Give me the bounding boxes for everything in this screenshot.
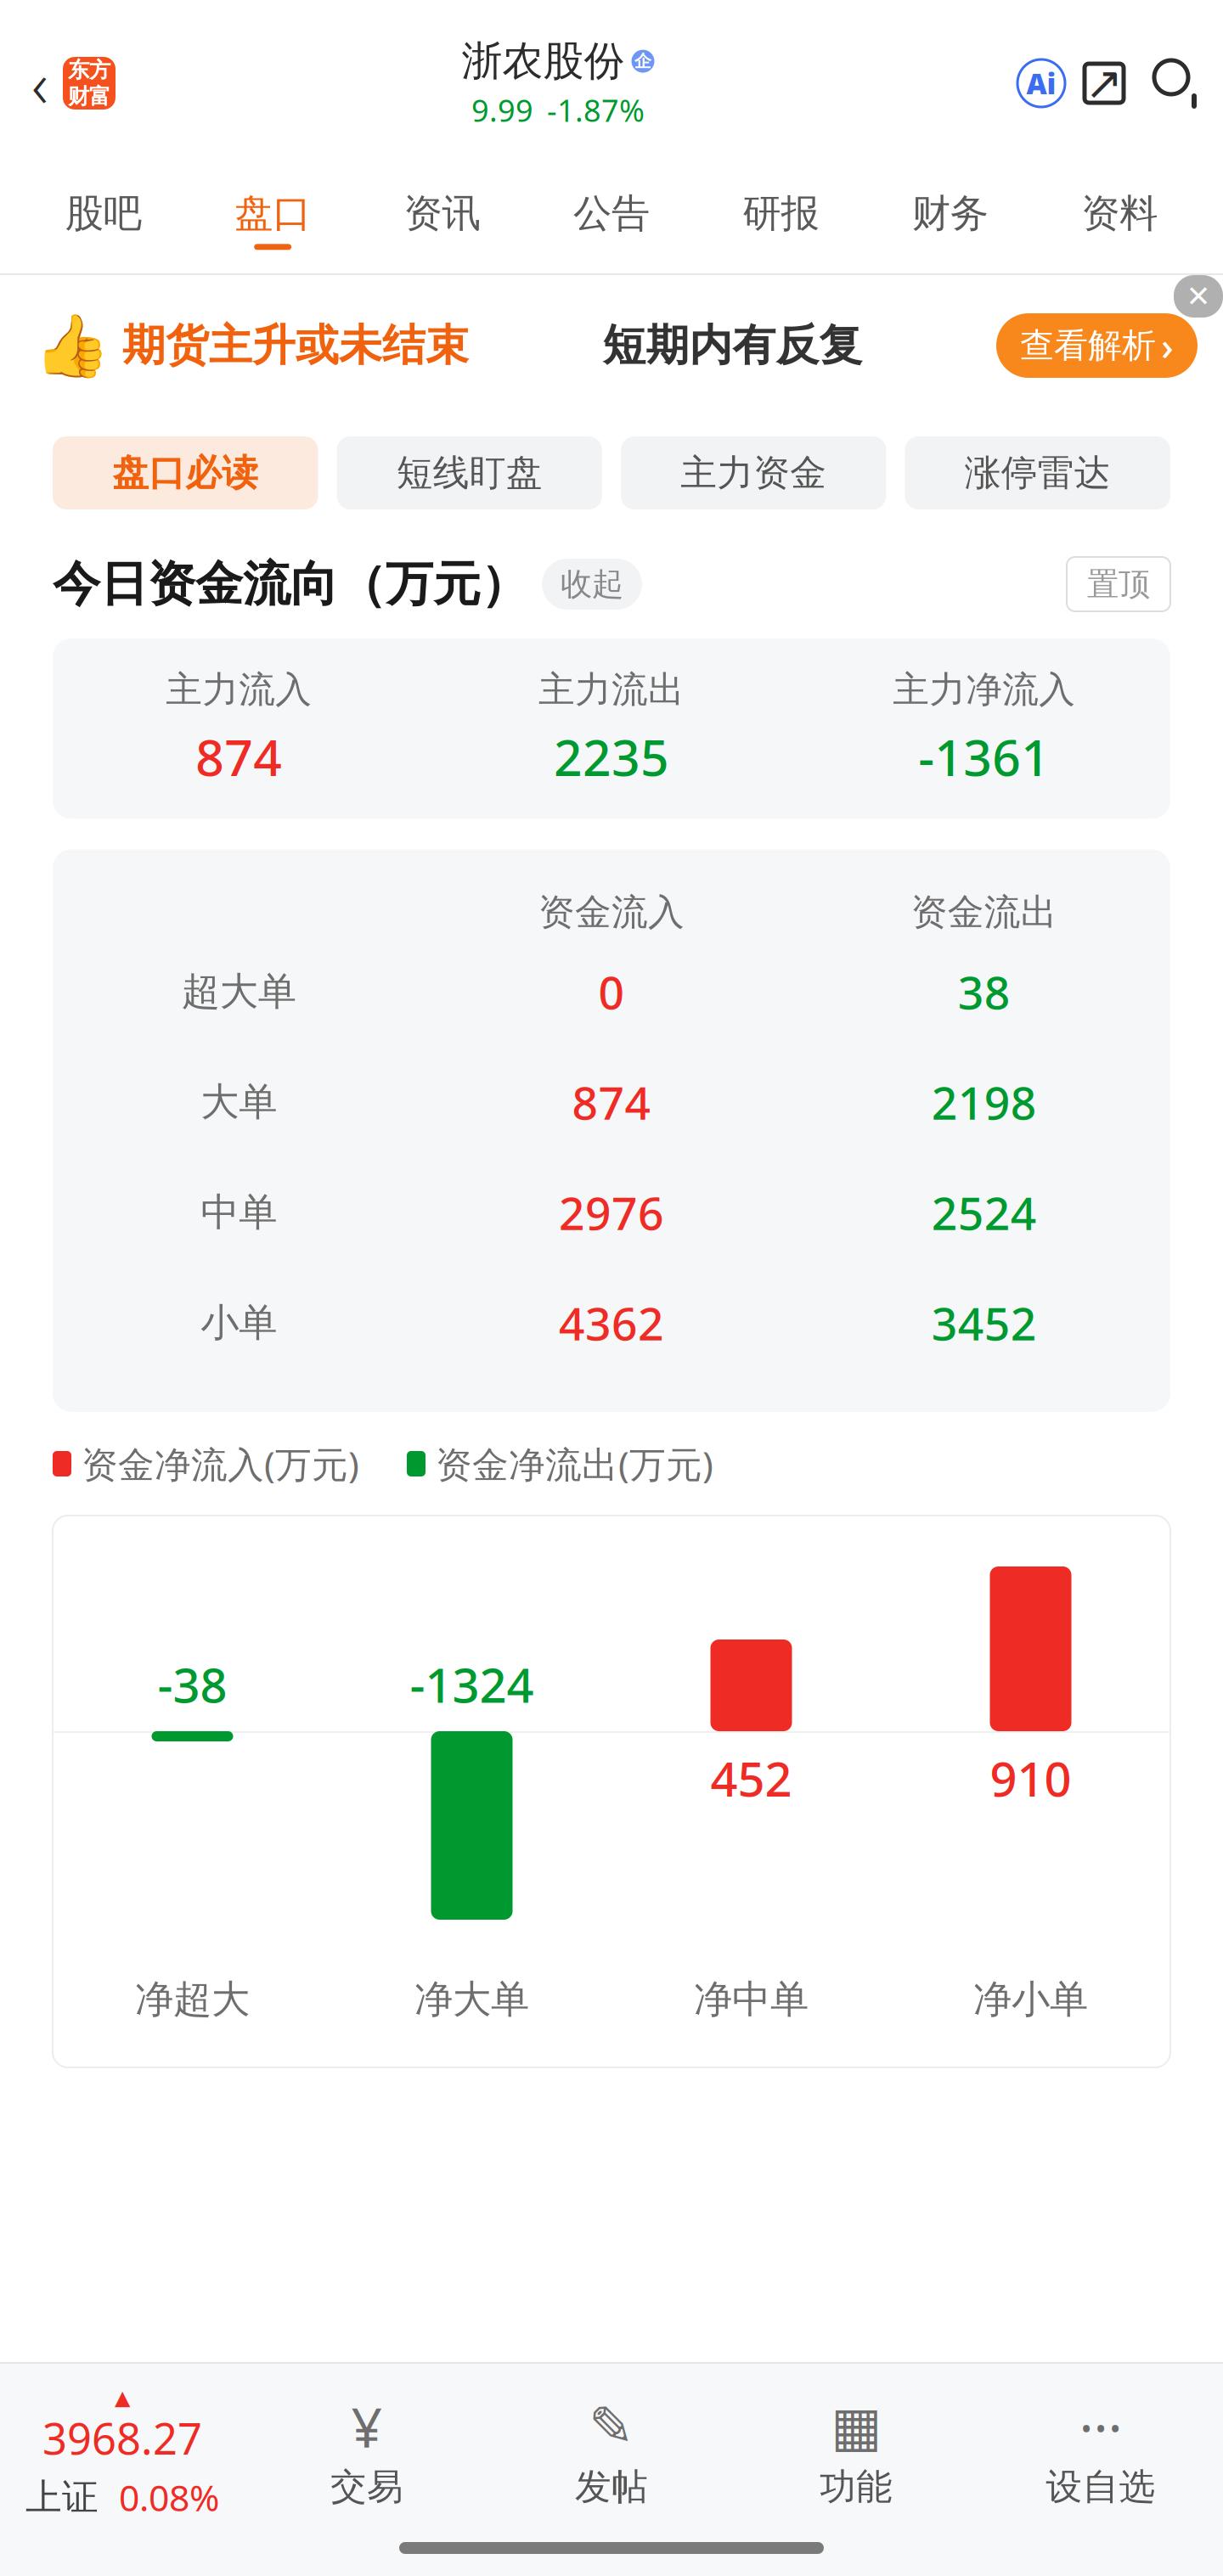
staticText: 主力流出 — [538, 667, 685, 712]
staticText: 874 — [572, 1072, 651, 1132]
staticText: 查看解析 — [1020, 325, 1156, 366]
staticText: 资金流出 — [911, 890, 1057, 935]
staticText: -1.87% — [547, 90, 645, 130]
button[interactable]: 短线盯盘 — [337, 436, 602, 509]
staticText: ↗ — [1085, 57, 1123, 109]
button[interactable]: ▦ — [734, 2398, 978, 2509]
button[interactable]: ··· — [978, 2398, 1223, 2509]
staticText: 净中单 — [694, 1976, 809, 2023]
staticText: 资金净流出(万元) — [436, 1440, 713, 1488]
staticText: 0 — [598, 962, 625, 1022]
staticText: ‹ — [31, 41, 48, 125]
button[interactable]: 盘口必读 — [53, 436, 318, 509]
staticText: 主力资金 — [680, 451, 827, 495]
staticText: 上证 — [25, 2475, 99, 2520]
button[interactable]: 查看解析 — [996, 313, 1198, 378]
staticText: 主力流入 — [166, 667, 312, 712]
staticText: 盘口 — [234, 190, 311, 237]
staticText: 超大单 — [182, 968, 296, 1015]
staticText: 资金流入 — [538, 890, 685, 935]
staticText: 短期内有反复 — [603, 319, 862, 372]
staticText: 东方 — [68, 57, 110, 83]
button[interactable]: Close ad — [1174, 275, 1223, 318]
staticText: ¥ — [351, 2390, 383, 2462]
button[interactable]: ✎ — [489, 2398, 734, 2509]
staticText: 3452 — [931, 1293, 1037, 1353]
staticText: › — [1161, 320, 1174, 371]
button[interactable]: 涨停雷达 — [905, 436, 1170, 509]
staticText: 发帖 — [575, 2465, 648, 2509]
button[interactable]: East Money home — [63, 57, 116, 110]
staticText: ▲ — [115, 2386, 130, 2409]
staticText: 主力净流入 — [893, 667, 1075, 712]
staticText: 2235 — [554, 724, 669, 790]
staticText: 38 — [958, 962, 1010, 1022]
button[interactable]: 财务 — [866, 166, 1035, 273]
button[interactable]: 股吧 — [19, 166, 188, 273]
staticText: 净大单 — [414, 1976, 529, 2023]
staticText: 0.08% — [119, 2473, 219, 2521]
button[interactable]: AI assistant — [1017, 59, 1065, 107]
staticText: 净超大 — [135, 1976, 250, 2023]
staticText: 2198 — [931, 1072, 1037, 1132]
staticText: 9.99 — [471, 90, 533, 130]
staticText: 短线盯盘 — [396, 451, 543, 495]
staticText: 910 — [990, 1746, 1071, 1810]
staticText: 期货主升或未结束 — [122, 319, 469, 372]
staticText: 资料 — [1081, 190, 1158, 237]
staticText: 净小单 — [973, 1976, 1088, 2023]
staticText: 交易 — [330, 2465, 403, 2509]
staticText: 设自选 — [1046, 2465, 1155, 2509]
staticText: 452 — [710, 1746, 792, 1810]
staticText: 小单 — [201, 1299, 277, 1346]
staticText: ✎ — [589, 2396, 634, 2457]
staticText: 功能 — [820, 2465, 893, 2509]
staticText: 4362 — [559, 1293, 664, 1353]
button[interactable]: Back — [17, 42, 63, 124]
button[interactable]: 收起 — [542, 559, 642, 610]
staticText: 资讯 — [404, 190, 480, 237]
staticText: 浙农股份 — [462, 36, 625, 86]
staticText: -38 — [158, 1653, 227, 1716]
staticText: 2976 — [559, 1182, 664, 1242]
staticText: 企 — [634, 51, 651, 72]
button[interactable]: 研报 — [696, 166, 866, 273]
button[interactable]: Search — [1143, 44, 1211, 122]
staticText: 资金净流入(万元) — [82, 1440, 359, 1488]
staticText: 2524 — [931, 1182, 1037, 1242]
staticText: 874 — [196, 724, 282, 790]
button[interactable]: 资讯 — [357, 166, 527, 273]
staticText: -1324 — [410, 1653, 534, 1716]
staticText: Ai — [1026, 64, 1056, 102]
button[interactable]: 资料 — [1035, 166, 1204, 273]
staticText: 👍 — [34, 311, 110, 381]
button[interactable]: 公告 — [527, 166, 696, 273]
staticText: 置顶 — [1087, 565, 1150, 604]
staticText: 财富 — [68, 83, 110, 110]
staticText: 今日资金流向（万元） — [53, 555, 528, 613]
button[interactable]: 置顶 — [1067, 557, 1170, 611]
staticText: ✕ — [1186, 280, 1211, 313]
staticText: 收起 — [561, 565, 623, 604]
staticText: 中单 — [201, 1189, 277, 1236]
button[interactable]: 主力资金 — [621, 436, 886, 509]
staticText: ··· — [1079, 2390, 1122, 2462]
staticText: 涨停雷达 — [965, 451, 1111, 495]
button[interactable]: Share — [1065, 44, 1143, 122]
button[interactable]: 盘口 — [188, 166, 357, 273]
button[interactable]: ¥ — [245, 2398, 489, 2509]
staticText: 股吧 — [65, 190, 142, 237]
staticText: 公告 — [573, 190, 650, 237]
staticText: 研报 — [743, 190, 819, 237]
staticText: 3968.27 — [42, 2409, 202, 2466]
staticText: ▦ — [831, 2396, 882, 2457]
staticText: -1361 — [918, 724, 1050, 790]
staticText: 财务 — [912, 190, 989, 237]
staticText: 盘口必读 — [112, 451, 258, 495]
staticText: 大单 — [201, 1078, 277, 1126]
